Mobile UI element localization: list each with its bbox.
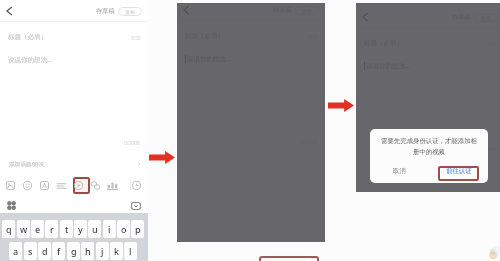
staticText: k [114, 245, 120, 257]
staticText: q [6, 223, 12, 235]
staticText: 前往认证 [446, 167, 472, 175]
staticText: i [108, 223, 111, 235]
staticText: 取消 [393, 167, 406, 175]
button[interactable]: e [31, 220, 44, 238]
button[interactable]: Poll [107, 181, 118, 190]
button[interactable]: Paragraph [57, 183, 66, 189]
staticText: 需要先完成身份认证，才能添加相 册中的视频 [370, 137, 488, 156]
button[interactable]: o [117, 220, 130, 238]
button[interactable]: Back [357, 9, 373, 25]
button[interactable]: f [52, 242, 65, 260]
staticText: f [57, 245, 61, 257]
staticText: 说说你的想法... [366, 61, 411, 70]
button[interactable]: j [96, 242, 109, 260]
button[interactable]: r [45, 220, 58, 238]
staticText: h [85, 245, 91, 257]
staticText: o [121, 223, 127, 235]
staticText: r [50, 223, 54, 235]
staticText: y [78, 223, 83, 235]
button[interactable]: Back [1, 3, 17, 19]
button[interactable]: u [88, 220, 101, 238]
button[interactable]: Add image [6, 181, 15, 190]
staticText: a [13, 245, 19, 257]
staticText: 0/2000 [124, 140, 140, 147]
button[interactable]: Add link [91, 181, 100, 190]
staticText: 添加话题/好友 [9, 160, 45, 168]
button[interactable]: y [74, 220, 87, 238]
staticText: 0/2000 [480, 146, 496, 153]
button[interactable]: Emoji keyboard [131, 202, 141, 210]
button[interactable]: h [81, 242, 94, 260]
button[interactable]: g [67, 242, 80, 260]
staticText: s [28, 245, 33, 257]
staticText: u [92, 223, 98, 235]
button[interactable]: 取消 [370, 163, 429, 179]
button[interactable]: Emoji [23, 181, 32, 190]
staticText: 发布 [125, 9, 135, 15]
button[interactable]: k [110, 242, 123, 260]
button[interactable]: w [17, 220, 30, 238]
staticText: 说说你的想法... [187, 54, 232, 63]
staticText: w [20, 223, 28, 235]
staticText: 0/30 [131, 35, 141, 41]
staticText: 存草稿 [96, 7, 115, 15]
button[interactable]: Text style [40, 181, 49, 190]
staticText: p [135, 223, 141, 235]
staticText: e [35, 223, 41, 235]
staticText: l [129, 245, 132, 257]
staticText: 标题（必填） [8, 33, 47, 41]
staticText: t [65, 223, 69, 235]
button[interactable]: 前往认证 [429, 163, 488, 179]
button[interactable]: i [103, 220, 116, 238]
staticText: j [101, 245, 104, 257]
button[interactable]: l [124, 242, 137, 260]
button[interactable]: 添加话题/好友 [0, 155, 148, 172]
button[interactable]: 发布 [118, 7, 142, 16]
button[interactable]: Back [178, 3, 194, 18]
staticText: 说说你的想法... [8, 55, 53, 64]
button[interactable]: Add video [74, 181, 83, 190]
button[interactable]: p [131, 220, 144, 238]
button[interactable]: s [24, 242, 37, 260]
button[interactable]: Keyboard switch [7, 201, 16, 210]
button[interactable]: Schedule post [132, 181, 141, 190]
staticText: g [71, 245, 77, 257]
button[interactable]: q [2, 220, 15, 238]
button[interactable]: 存草稿 [96, 7, 115, 15]
button[interactable]: d [38, 242, 51, 260]
button[interactable]: a [9, 242, 22, 260]
button[interactable]: t [60, 220, 73, 238]
staticText: d [42, 245, 48, 257]
